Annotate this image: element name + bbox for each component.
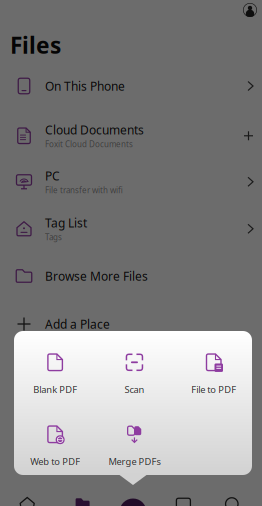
button[interactable]: On This Phone	[0, 77, 262, 95]
staticText: Scan	[124, 383, 144, 396]
button[interactable]: Add a Place	[0, 315, 262, 333]
button[interactable]: Scan	[95, 350, 174, 398]
staticText: Browse More Files	[45, 268, 148, 284]
button[interactable]: Tag List	[0, 215, 262, 233]
button[interactable]: Web to PDF	[15, 422, 95, 470]
staticText: PC	[45, 168, 60, 184]
button[interactable]: Create	[105, 475, 157, 506]
button[interactable]: Account	[239, 0, 261, 21]
button[interactable]: Tools	[157, 475, 210, 506]
staticText: File to PDF	[191, 383, 236, 396]
button[interactable]: Blank PDF	[15, 350, 95, 398]
staticText: Web to PDF	[30, 455, 80, 468]
button[interactable]: Home	[0, 475, 52, 506]
button[interactable]: Cloud Documents	[0, 122, 262, 140]
staticText: Tag List	[45, 215, 87, 231]
staticText: Add a Place	[45, 316, 110, 332]
staticText: On This Phone	[45, 78, 125, 94]
button[interactable]: Me	[210, 475, 262, 506]
staticText: File transfer with wifi	[45, 185, 123, 195]
staticText: Tags	[45, 232, 62, 242]
button[interactable]: File to PDF	[174, 350, 253, 398]
staticText: Merge PDFs	[108, 455, 160, 468]
button[interactable]: Browse More Files	[0, 267, 262, 285]
staticText: Blank PDF	[33, 383, 77, 396]
staticText: Foxit Cloud Documents	[45, 139, 133, 149]
staticText: Cloud Documents	[45, 122, 144, 138]
button[interactable]: Files	[52, 475, 105, 506]
staticText: Files	[10, 30, 61, 60]
button[interactable]: Merge PDFs	[95, 422, 174, 470]
button[interactable]: PC	[0, 168, 262, 186]
